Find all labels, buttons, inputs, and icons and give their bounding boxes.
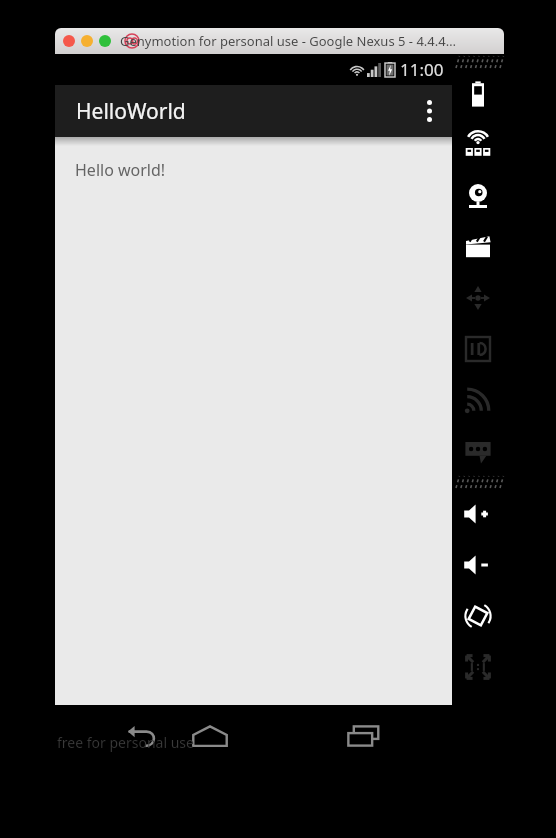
button[interactable]: Identifiers [452,323,504,374]
staticText: 11:00 [400,58,444,81]
staticText: Hello world! [75,159,166,181]
button[interactable]: More options [406,85,452,137]
button[interactable]: GPS [452,119,504,170]
button[interactable]: Accelerometer [452,272,504,323]
button[interactable]: Camera [452,170,504,221]
staticText: HelloWorld [76,97,186,126]
button[interactable]: Battery [452,68,504,119]
button[interactable]: Volume up [452,488,504,539]
button[interactable]: Volume down [452,539,504,590]
button[interactable]: SMS [452,425,504,476]
staticText: free for personal use [57,733,194,752]
button[interactable]: Recent apps [334,714,394,758]
button[interactable]: Home [180,714,240,758]
button[interactable]: Rotate [452,590,504,641]
staticText: Genymotion for personal use - Google Nex… [120,32,456,50]
button[interactable]: Network [452,374,504,425]
button[interactable]: Video [452,221,504,272]
button[interactable]: Back [113,714,173,758]
button[interactable]: Scale 1:1 [452,641,504,692]
